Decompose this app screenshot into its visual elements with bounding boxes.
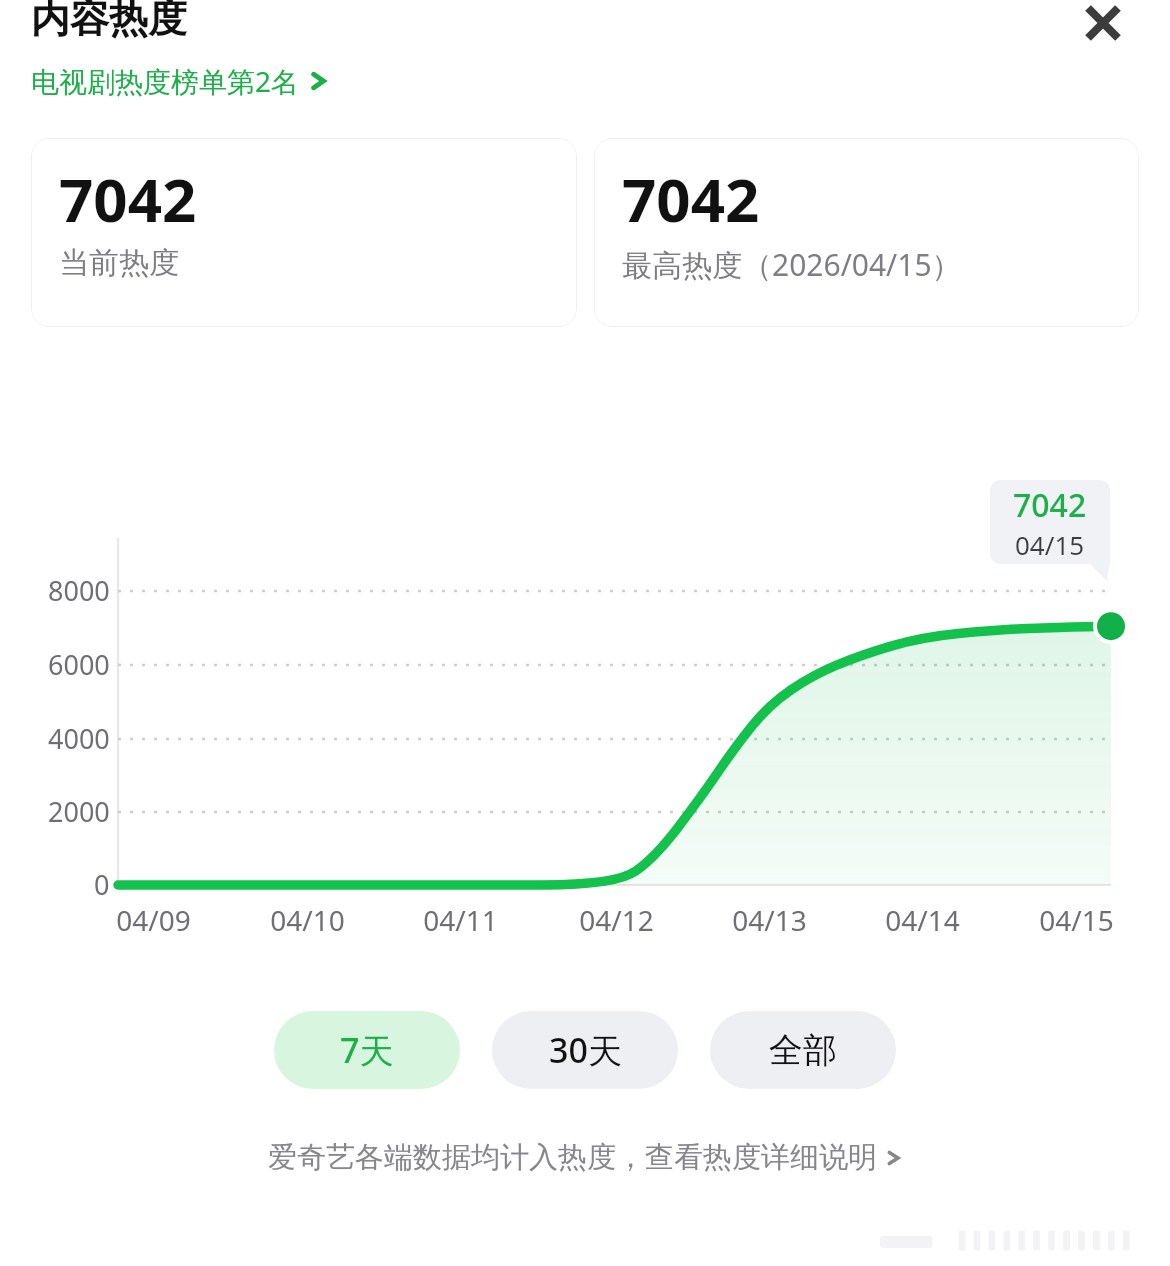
staticText: 全部 xyxy=(769,1029,837,1072)
staticText: 04/14 xyxy=(885,901,960,939)
staticText: 30天 xyxy=(549,1027,622,1073)
button[interactable]: 7042 xyxy=(594,138,1139,327)
staticText: 6000 xyxy=(48,646,110,683)
staticText: 爱奇艺各端数据均计入热度，查看热度详细说明 xyxy=(268,1139,877,1176)
staticText: 04/15 xyxy=(1039,901,1114,939)
staticText: 04/09 xyxy=(116,901,191,939)
button[interactable]: 电视剧热度榜单第2名 xyxy=(31,62,330,100)
staticText: 7042 xyxy=(1013,483,1087,527)
staticText: 2000 xyxy=(48,793,110,830)
staticText: 04/12 xyxy=(579,901,654,939)
staticText: 04/10 xyxy=(270,901,345,939)
staticText: 4000 xyxy=(48,720,110,757)
staticText: 7042 xyxy=(622,158,760,240)
button[interactable]: Close xyxy=(1060,0,1146,66)
staticText: 7042 xyxy=(59,158,197,240)
button[interactable]: 爱奇艺各端数据均计入热度，查看热度详细说明 xyxy=(0,1139,1170,1176)
button[interactable]: 30天 xyxy=(492,1011,678,1089)
staticText: 7天 xyxy=(340,1027,394,1073)
button[interactable]: 全部 xyxy=(710,1011,896,1089)
staticText: 04/11 xyxy=(423,901,498,939)
button[interactable]: 7天 xyxy=(274,1011,460,1089)
staticText: 0 xyxy=(94,866,110,903)
button[interactable]: 7042 xyxy=(31,138,577,327)
staticText: 当前热度 xyxy=(59,244,179,282)
staticText: 最高热度（2026/04/15） xyxy=(622,244,962,285)
staticText: 04/13 xyxy=(732,901,807,939)
staticText: 电视剧热度榜单第2名 xyxy=(31,62,300,100)
staticText: 8000 xyxy=(48,572,110,609)
staticText: 04/15 xyxy=(1015,527,1085,562)
staticText: 内容热度 xyxy=(31,0,187,43)
